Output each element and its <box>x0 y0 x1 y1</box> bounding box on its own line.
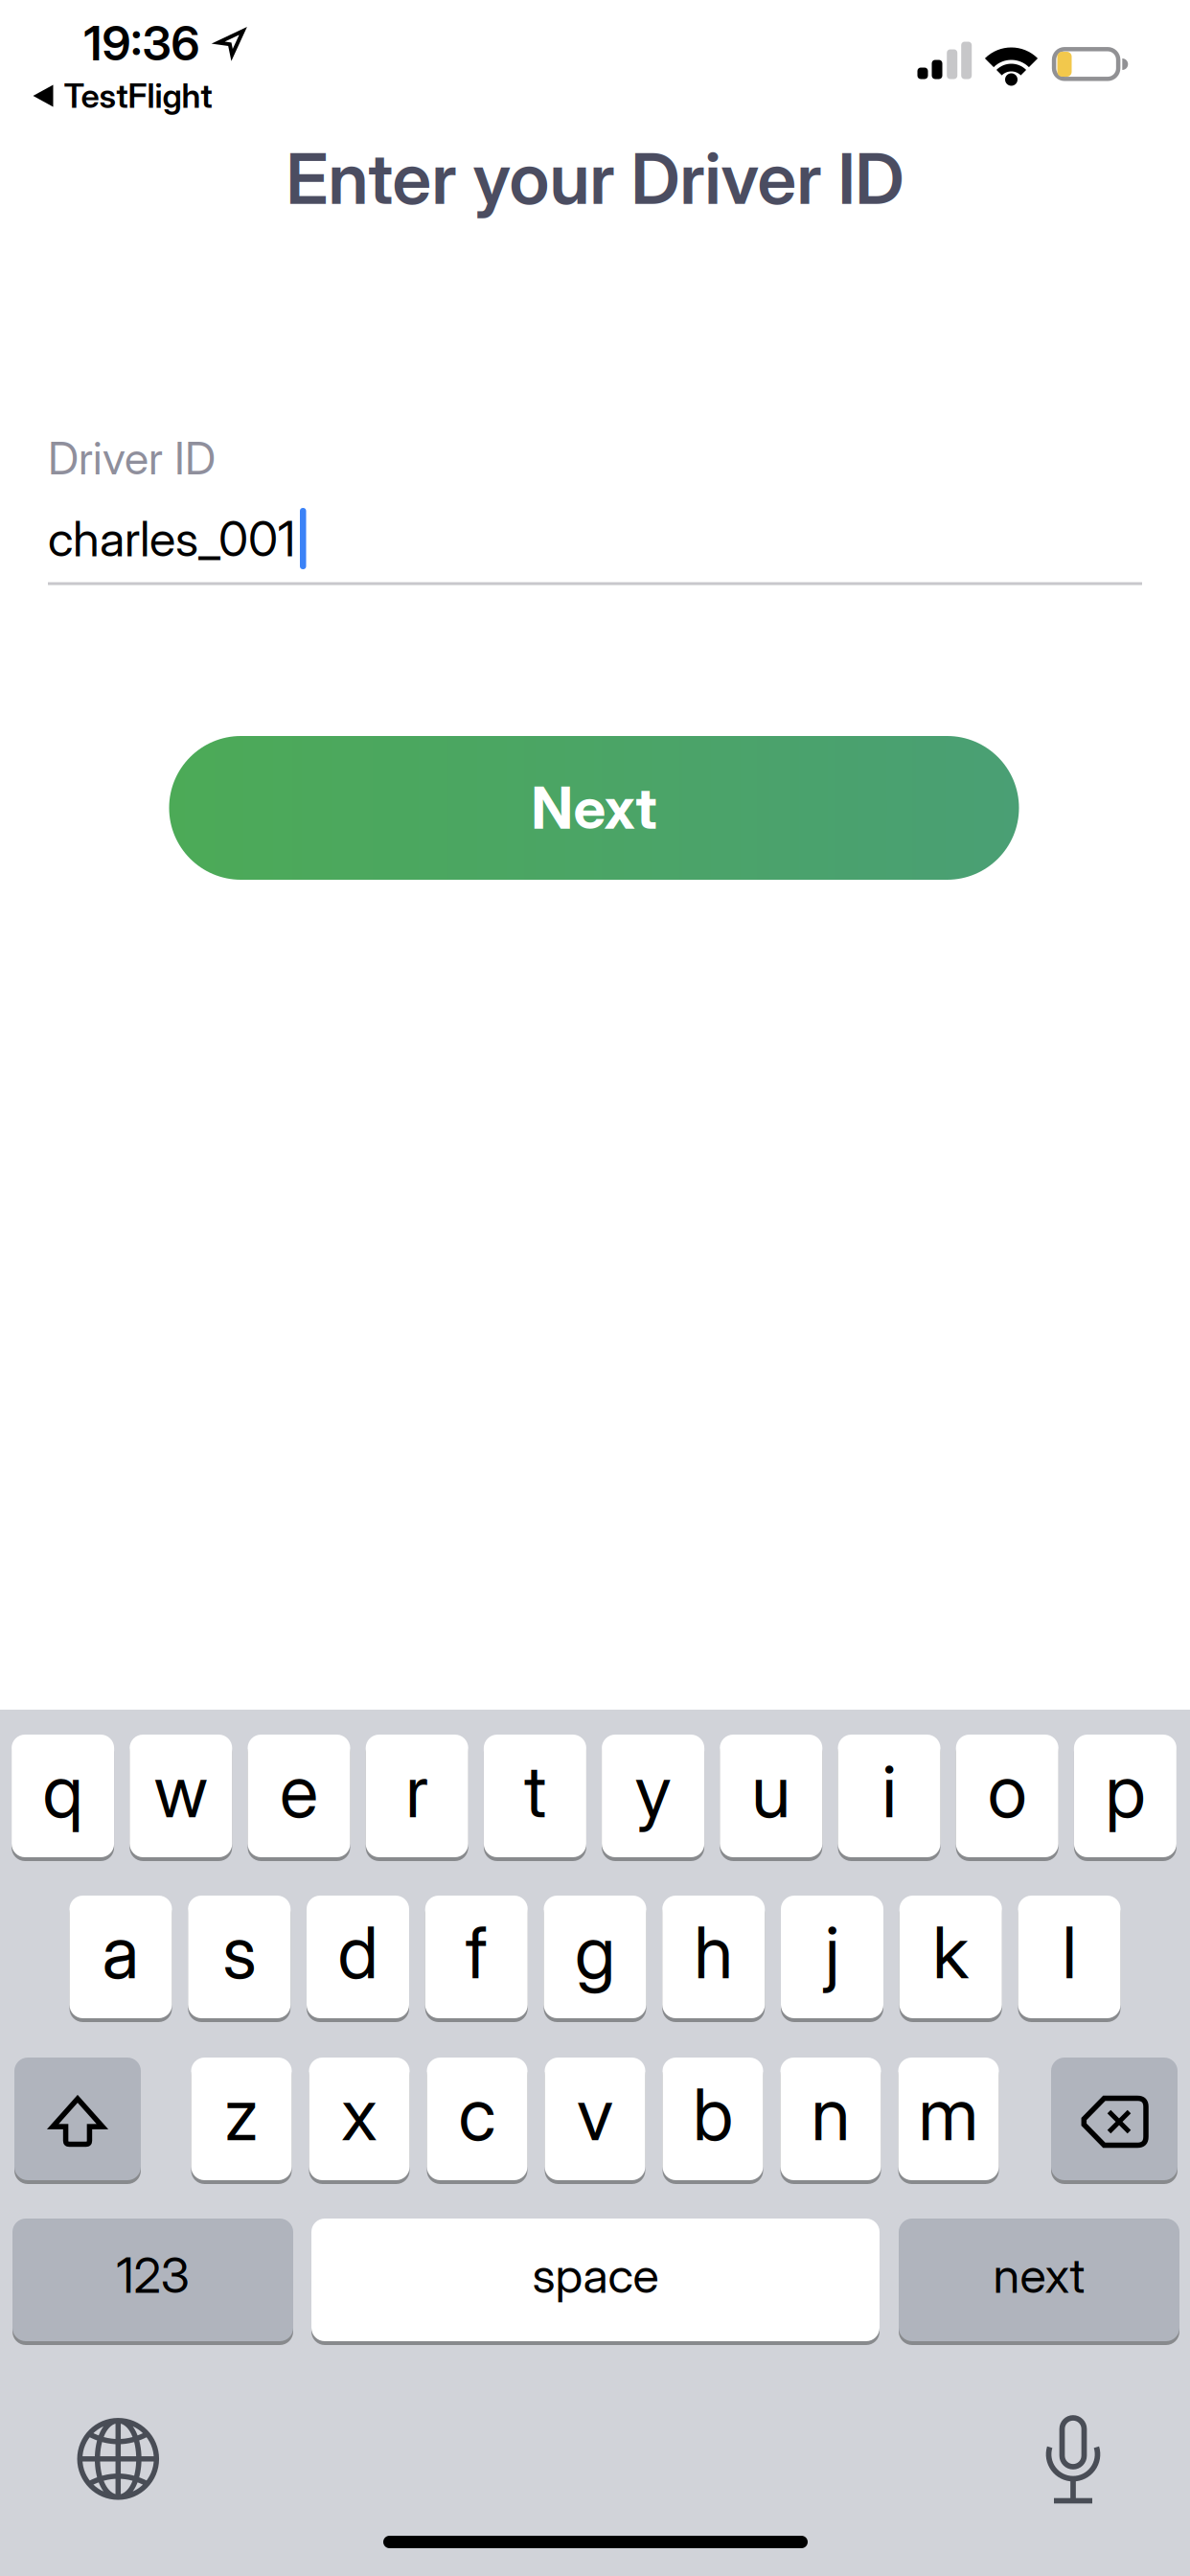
button[interactable]: i <box>838 1733 940 1859</box>
button[interactable]: v <box>545 2056 645 2182</box>
button[interactable] <box>1045 2415 1101 2505</box>
button[interactable]: c <box>427 2056 527 2182</box>
button[interactable]: e <box>248 1733 350 1859</box>
staticText: l <box>1062 1909 1076 1995</box>
button[interactable]: n <box>780 2056 881 2182</box>
button[interactable]: f <box>425 1894 528 2020</box>
button[interactable]: q <box>12 1733 114 1859</box>
staticText: q <box>43 1748 83 1834</box>
button[interactable]: r <box>366 1733 468 1859</box>
staticText: n <box>811 2071 850 2157</box>
staticText: s <box>222 1909 256 1995</box>
button[interactable]: a <box>69 1894 172 2020</box>
button[interactable]: s <box>188 1894 291 2020</box>
staticText: 123 <box>116 2246 189 2304</box>
staticText: z <box>224 2071 259 2157</box>
staticText: e <box>280 1748 318 1834</box>
button[interactable]: g <box>544 1894 646 2020</box>
staticText: TestFlight <box>64 76 212 116</box>
staticText: x <box>341 2071 378 2157</box>
button[interactable]: m <box>898 2056 999 2182</box>
staticText: r <box>405 1748 428 1834</box>
button[interactable]: x <box>309 2056 410 2182</box>
button[interactable]: d <box>307 1894 409 2020</box>
button[interactable]: h <box>662 1894 765 2020</box>
staticText: t <box>524 1748 546 1834</box>
staticText: o <box>988 1748 1027 1834</box>
button[interactable]: TestFlight <box>33 76 212 116</box>
staticText: charles_001 <box>48 509 295 568</box>
staticText: space <box>532 2246 659 2304</box>
staticText: c <box>458 2071 496 2157</box>
staticText: i <box>882 1748 896 1834</box>
staticText: f <box>465 1909 487 1995</box>
staticText: y <box>635 1748 671 1834</box>
button[interactable] <box>14 2056 141 2182</box>
staticText: g <box>575 1909 615 1995</box>
staticText: k <box>932 1909 969 1995</box>
staticText: m <box>918 2071 979 2157</box>
button[interactable] <box>1051 2056 1178 2182</box>
button[interactable] <box>80 2421 156 2497</box>
staticText: u <box>751 1748 791 1834</box>
button[interactable]: o <box>956 1733 1058 1859</box>
staticText: next <box>993 2246 1085 2304</box>
button[interactable]: Next <box>169 736 1019 880</box>
staticText: h <box>694 1909 733 1995</box>
button[interactable]: z <box>191 2056 292 2182</box>
staticText: Enter your Driver ID <box>286 136 904 221</box>
button[interactable]: b <box>663 2056 763 2182</box>
staticText: Next <box>531 773 657 843</box>
button[interactable]: u <box>720 1733 822 1859</box>
staticText: b <box>693 2071 733 2157</box>
button[interactable]: next <box>899 2217 1179 2343</box>
staticText: d <box>338 1909 378 1995</box>
staticText: Driver ID <box>48 431 216 485</box>
button[interactable]: t <box>484 1733 586 1859</box>
button[interactable]: j <box>781 1894 883 2020</box>
staticText: v <box>577 2071 613 2157</box>
button[interactable]: l <box>1018 1894 1121 2020</box>
staticText: 19:36 <box>84 15 200 72</box>
button[interactable]: p <box>1074 1733 1176 1859</box>
button[interactable]: 123 <box>12 2217 293 2343</box>
button[interactable]: w <box>130 1733 232 1859</box>
staticText: a <box>102 1909 139 1995</box>
staticText: j <box>825 1909 839 1995</box>
staticText: p <box>1105 1748 1145 1834</box>
staticText: w <box>154 1748 208 1834</box>
button[interactable]: y <box>602 1733 704 1859</box>
button[interactable]: space <box>311 2217 880 2343</box>
button[interactable]: k <box>899 1894 1002 2020</box>
